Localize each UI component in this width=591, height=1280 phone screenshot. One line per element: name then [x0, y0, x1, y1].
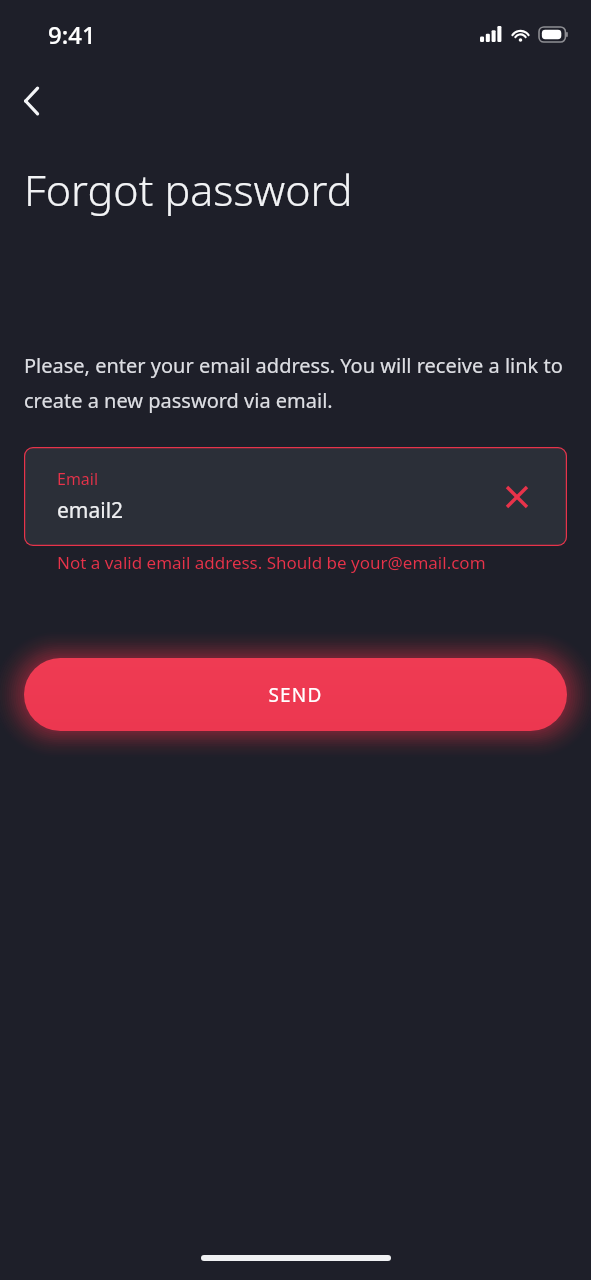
- staticText: Please, enter your email address. You wi…: [24, 352, 567, 414]
- button[interactable]: SEND: [24, 658, 567, 731]
- staticText: Forgot password: [24, 160, 353, 219]
- staticText: 9:41: [48, 18, 96, 51]
- staticText: Not a valid email address. Should be you…: [57, 551, 486, 574]
- button[interactable]: Back: [8, 77, 56, 125]
- staticText: SEND: [268, 682, 323, 708]
- button[interactable]: Clear email: [497, 477, 537, 517]
- staticText: Email: [57, 468, 99, 490]
- button[interactable]: Email: [24, 447, 567, 546]
- staticText: email2: [57, 496, 124, 525]
